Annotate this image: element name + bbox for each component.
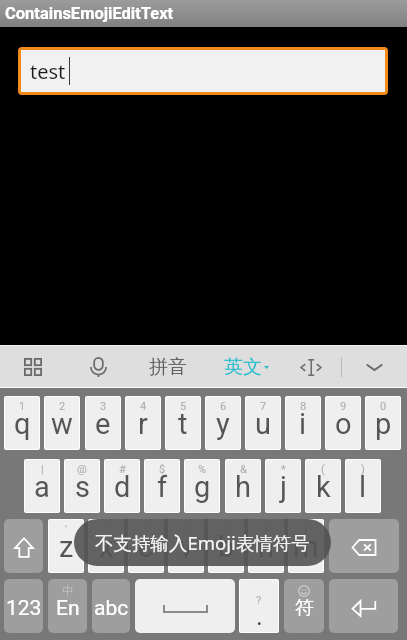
button[interactable]: test: [21, 50, 385, 92]
button[interactable]: :: [129, 520, 163, 572]
staticText: 1: [19, 400, 26, 413]
button[interactable]: &: [226, 460, 260, 512]
staticText: ContainsEmojiEditText: [5, 4, 174, 23]
staticText: 0: [380, 400, 387, 413]
staticText: u: [255, 407, 271, 441]
button[interactable]: Space: [135, 579, 235, 633]
staticText: test: [30, 58, 66, 85]
staticText: e: [95, 407, 111, 441]
staticText: .: [256, 601, 263, 631]
staticText: 拼音: [149, 355, 187, 379]
button[interactable]: ;: [169, 520, 203, 572]
button[interactable]: /: [289, 520, 323, 572]
button[interactable]: 符: [284, 579, 324, 633]
staticText: c: [138, 530, 154, 564]
button[interactable]: ': [49, 520, 83, 572]
button[interactable]: $: [145, 460, 179, 512]
staticText: #: [119, 463, 126, 476]
button[interactable]: 1: [5, 397, 39, 449]
staticText: &: [240, 463, 247, 476]
button[interactable]: ": [89, 520, 123, 572]
staticText: |: [41, 463, 44, 476]
button[interactable]: 4: [126, 397, 160, 449]
staticText: m: [293, 530, 319, 564]
button[interactable]: 6: [206, 397, 240, 449]
button[interactable]: 9: [326, 397, 360, 449]
button[interactable]: Hide keyboard: [366, 363, 383, 372]
button[interactable]: Voice input: [90, 357, 107, 377]
staticText: l: [359, 470, 367, 504]
button[interactable]: Move cursor: [301, 359, 321, 376]
button[interactable]: Enter: [329, 579, 398, 633]
staticText: 123: [6, 596, 42, 621]
staticText: i: [299, 407, 307, 441]
button[interactable]: 0: [366, 397, 400, 449]
staticText: abc: [94, 596, 129, 621]
button[interactable]: *: [266, 460, 300, 512]
button[interactable]: (: [306, 460, 340, 512]
button[interactable]: 拼音: [145, 351, 190, 382]
button[interactable]: 英文: [224, 351, 272, 382]
staticText: s: [75, 470, 90, 504]
button[interactable]: ?: [249, 520, 283, 572]
button[interactable]: Shift: [4, 519, 43, 573]
staticText: ?: [263, 523, 269, 536]
staticText: 英文: [224, 355, 262, 379]
staticText: 8: [300, 400, 307, 413]
button[interactable]: Backspace: [329, 519, 399, 573]
button[interactable]: 123: [4, 579, 43, 633]
staticText: /: [304, 523, 309, 536]
button[interactable]: 5: [166, 397, 200, 449]
staticText: 5: [180, 400, 187, 413]
button[interactable]: @: [65, 460, 99, 512]
staticText: (: [321, 463, 325, 476]
staticText: 4: [140, 400, 147, 413]
staticText: ): [361, 463, 365, 476]
button[interactable]: ): [346, 460, 380, 512]
button[interactable]: 8: [286, 397, 320, 449]
staticText: ": [104, 523, 108, 536]
staticText: w: [51, 407, 73, 441]
staticText: h: [235, 470, 251, 504]
staticText: p: [375, 407, 392, 441]
button[interactable]: abc: [92, 579, 130, 633]
staticText: b: [218, 530, 235, 564]
staticText: $: [159, 463, 166, 476]
button[interactable]: |: [25, 460, 59, 512]
staticText: f: [157, 470, 168, 504]
staticText: *: [281, 463, 286, 476]
staticText: 9: [340, 400, 347, 413]
staticText: %: [198, 463, 207, 476]
staticText: En: [56, 596, 80, 621]
button[interactable]: Keyboard layout: [24, 358, 42, 376]
staticText: 7: [260, 400, 267, 413]
staticText: 不支持输入Emoji表情符号: [95, 530, 310, 555]
staticText: t: [178, 407, 188, 441]
staticText: @: [77, 463, 87, 476]
staticText: 符: [295, 596, 314, 620]
staticText: g: [194, 470, 211, 504]
staticText: 3: [100, 400, 107, 413]
staticText: n: [258, 530, 275, 564]
button[interactable]: 7: [246, 397, 280, 449]
button[interactable]: 2: [45, 397, 79, 449]
staticText: ': [65, 523, 67, 536]
staticText: x: [99, 530, 114, 564]
button[interactable]: %: [185, 460, 219, 512]
button[interactable]: ?: [240, 580, 278, 632]
staticText: z: [59, 530, 74, 564]
staticText: q: [14, 407, 31, 441]
button[interactable]: !: [209, 520, 243, 572]
staticText: y: [216, 407, 230, 441]
staticText: d: [114, 470, 131, 504]
staticText: v: [179, 530, 194, 564]
button[interactable]: 3: [86, 397, 120, 449]
button[interactable]: #: [105, 460, 139, 512]
button[interactable]: 中: [48, 579, 87, 633]
staticText: k: [316, 470, 331, 504]
staticText: 中: [62, 583, 74, 598]
staticText: ?: [256, 594, 262, 607]
